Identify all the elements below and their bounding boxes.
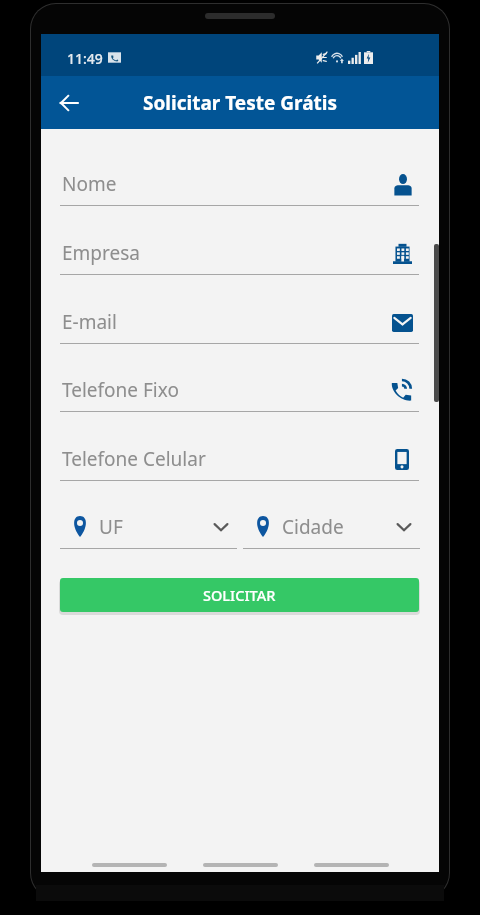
staticText: Telefone Fixo bbox=[62, 377, 179, 403]
staticText: Cidade bbox=[282, 514, 344, 540]
staticText: 11:49 bbox=[67, 49, 103, 68]
staticText: SOLICITAR bbox=[203, 585, 276, 605]
button[interactable]: Voltar bbox=[91, 854, 167, 876]
button[interactable]: Nome bbox=[60, 163, 419, 206]
button[interactable]: UF bbox=[60, 506, 237, 549]
button[interactable]: Telefone Celular bbox=[60, 438, 419, 481]
button[interactable]: Recentes bbox=[313, 854, 389, 876]
button[interactable]: Cidade bbox=[243, 506, 420, 549]
button[interactable]: Início bbox=[202, 854, 278, 876]
staticText: UF bbox=[99, 514, 123, 540]
staticText: Empresa bbox=[62, 240, 140, 266]
staticText: Telefone Celular bbox=[62, 446, 206, 472]
button[interactable]: Voltar bbox=[52, 86, 86, 120]
button[interactable]: E-mail bbox=[60, 301, 419, 344]
staticText: Nome bbox=[62, 171, 117, 197]
button[interactable]: Telefone Fixo bbox=[60, 369, 419, 412]
button[interactable]: SOLICITAR bbox=[60, 578, 419, 612]
button[interactable]: Empresa bbox=[60, 232, 419, 275]
staticText: E-mail bbox=[62, 309, 117, 335]
staticText: Solicitar Teste Grátis bbox=[143, 90, 337, 116]
